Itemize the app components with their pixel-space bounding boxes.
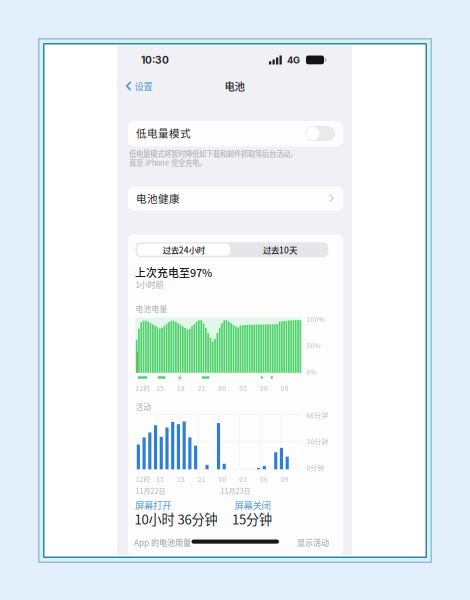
button[interactable]: 过去24小时 bbox=[137, 244, 230, 256]
staticText: 15分钟 bbox=[232, 509, 272, 528]
staticText: 18 bbox=[177, 384, 185, 393]
staticText: 60分钟 bbox=[306, 410, 328, 420]
staticText: 屏幕关闭 bbox=[234, 498, 270, 512]
staticText: 09 bbox=[281, 384, 289, 393]
staticText: 03 bbox=[239, 384, 247, 393]
staticText: 11月22日 bbox=[135, 486, 165, 496]
button[interactable]: 电池健康 bbox=[128, 187, 343, 211]
staticText: 低电量模式 bbox=[136, 125, 191, 141]
staticText: 0% bbox=[306, 367, 316, 376]
staticText: 50% bbox=[306, 340, 320, 350]
button[interactable]: 设置 bbox=[121, 75, 179, 97]
staticText: 11月23日 bbox=[220, 486, 250, 496]
staticText: 设置 bbox=[134, 79, 152, 93]
staticText: 10小时 36分钟 bbox=[134, 509, 217, 528]
staticText: 12时 bbox=[135, 475, 149, 484]
staticText: 电池电量 bbox=[135, 303, 167, 314]
staticText: 12时 bbox=[135, 384, 149, 393]
staticText: 03 bbox=[239, 475, 247, 484]
staticText: 21 bbox=[198, 384, 206, 393]
staticText: 10:30 bbox=[141, 54, 169, 66]
staticText: 显示活动 bbox=[297, 536, 329, 548]
staticText: 18 bbox=[177, 475, 185, 484]
staticText: 上次充电至97% bbox=[135, 264, 212, 280]
staticText: 06 bbox=[260, 475, 268, 484]
staticText: 直至 iPhone 完全充电。 bbox=[129, 157, 206, 168]
staticText: 09 bbox=[281, 475, 289, 484]
staticText: 15 bbox=[156, 475, 164, 484]
button[interactable]: 低电量模式 bbox=[128, 121, 343, 146]
staticText: 30分钟 bbox=[306, 436, 328, 446]
staticText: 06 bbox=[260, 384, 268, 393]
staticText: 00 bbox=[218, 475, 226, 484]
staticText: 100% bbox=[306, 314, 324, 324]
staticText: 21 bbox=[198, 475, 206, 484]
staticText: 00 bbox=[218, 384, 226, 393]
button[interactable]: 过去10天 bbox=[233, 244, 327, 256]
staticText: 电池 bbox=[224, 78, 244, 93]
staticText: 活动 bbox=[135, 401, 151, 412]
staticText: App 的电池用量 bbox=[134, 536, 191, 548]
staticText: 过去24小时 bbox=[163, 244, 205, 256]
staticText: 4G bbox=[287, 54, 300, 66]
staticText: 电池健康 bbox=[136, 190, 180, 206]
staticText: 1小时前 bbox=[135, 278, 163, 290]
staticText: 15 bbox=[156, 384, 164, 393]
staticText: 屏幕打开 bbox=[135, 498, 171, 512]
staticText: 过去10天 bbox=[263, 244, 297, 256]
staticText: 低电量模式将暂时降低如下载和邮件抓取等后台活动， bbox=[129, 148, 297, 159]
staticText: 0分钟 bbox=[306, 463, 324, 472]
